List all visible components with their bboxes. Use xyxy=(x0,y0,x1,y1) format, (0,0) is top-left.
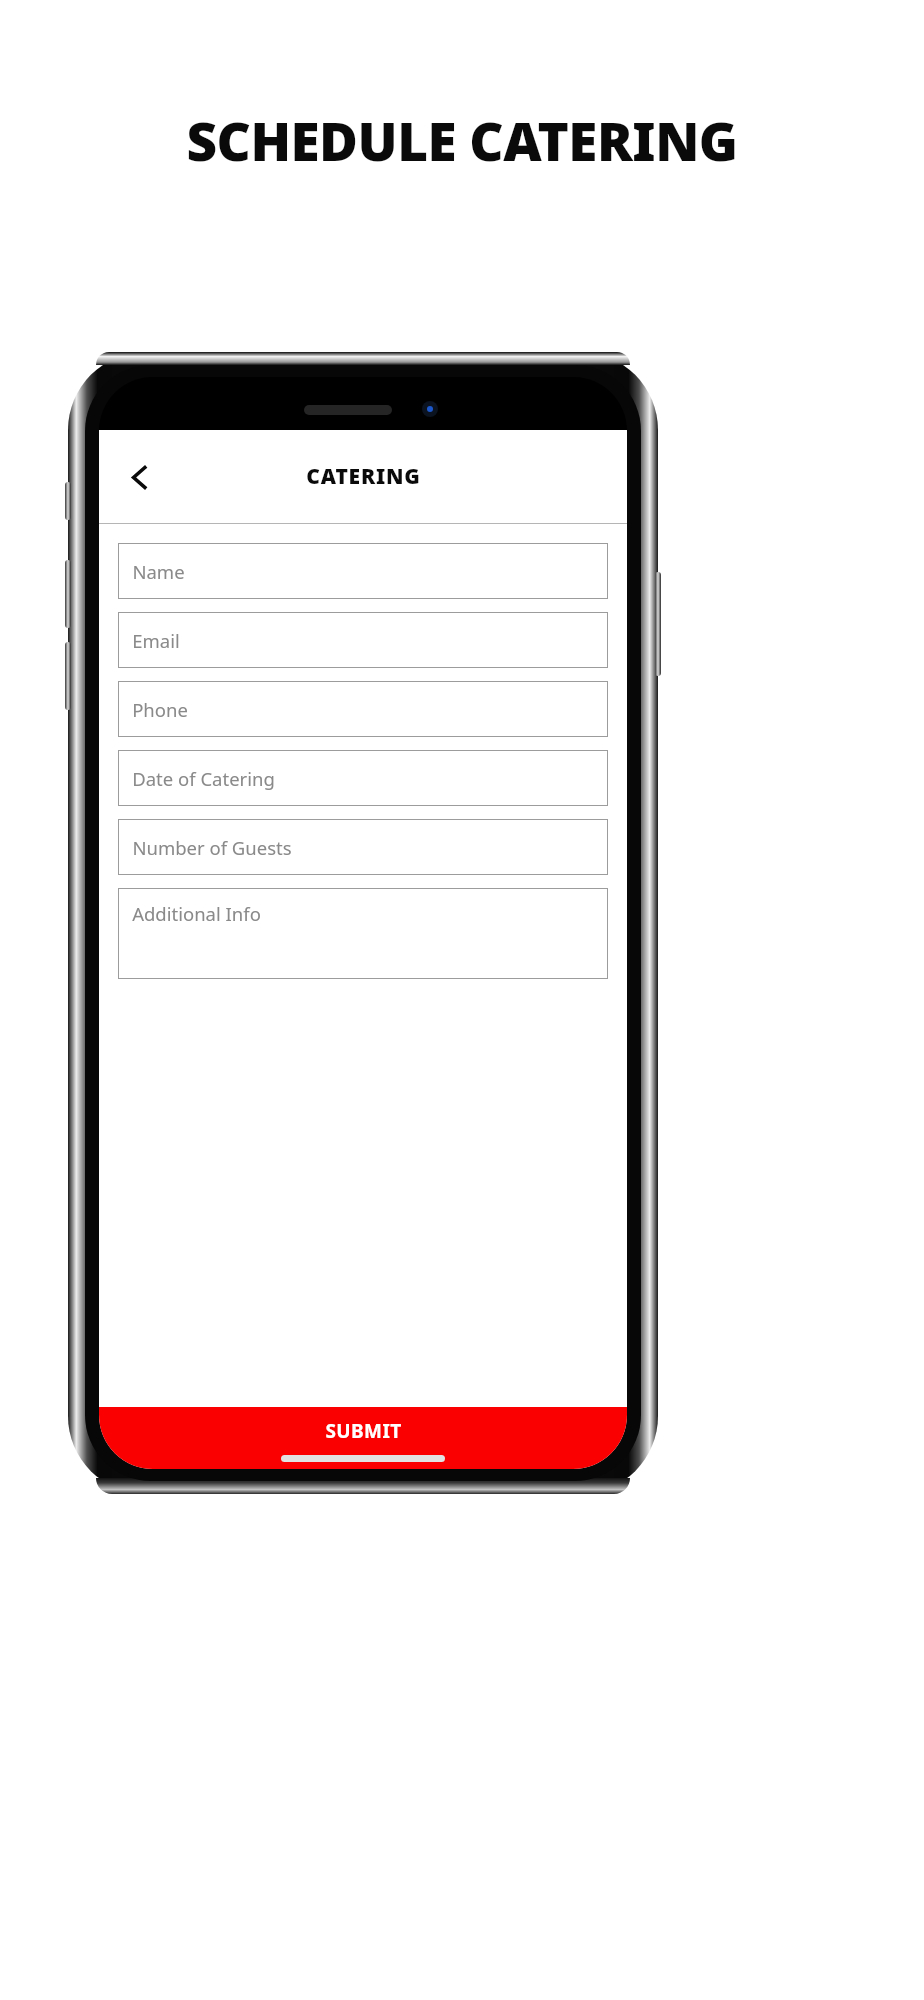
staticText: CATERING xyxy=(306,462,421,491)
button[interactable]: Date of Catering xyxy=(118,750,608,806)
button[interactable]: SUBMIT xyxy=(99,1407,627,1469)
staticText: Date of Catering xyxy=(132,766,275,791)
button[interactable]: Additional Info xyxy=(118,888,608,979)
staticText: Additional Info xyxy=(132,901,261,926)
staticText: Name xyxy=(132,559,185,584)
staticText: SCHEDULE CATERING xyxy=(186,104,738,176)
button[interactable]: Phone xyxy=(118,681,608,737)
staticText: Phone xyxy=(132,697,188,722)
button[interactable]: Name xyxy=(118,543,608,599)
button[interactable]: Back xyxy=(110,448,168,506)
staticText: Number of Guests xyxy=(132,835,292,860)
staticText: SUBMIT xyxy=(325,1418,402,1444)
button[interactable]: Email xyxy=(118,612,608,668)
staticText: Email xyxy=(132,628,180,653)
button[interactable]: Number of Guests xyxy=(118,819,608,875)
